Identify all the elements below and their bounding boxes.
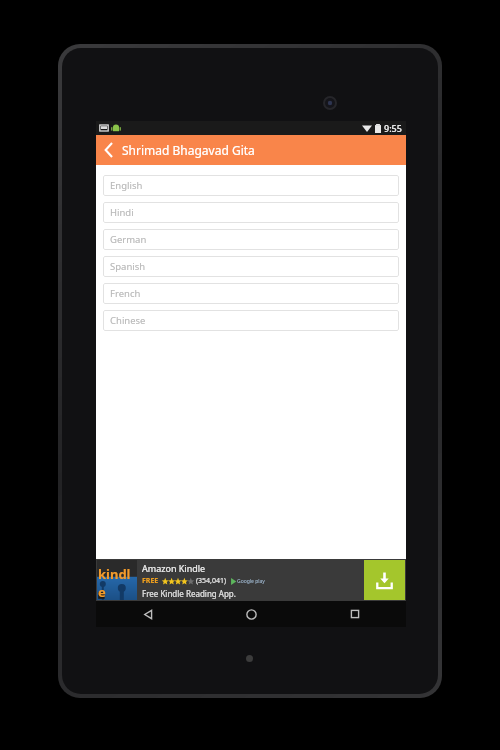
button[interactable]: Recents	[303, 601, 406, 627]
button[interactable]: kindle	[96, 559, 406, 601]
button[interactable]: Home	[200, 601, 303, 627]
staticText: Google play	[237, 578, 265, 585]
button[interactable]: German	[103, 229, 399, 250]
staticText: German	[110, 233, 147, 246]
button[interactable]: French	[103, 283, 399, 304]
staticText: (354,041)	[196, 576, 227, 586]
staticText: Chinese	[110, 314, 146, 327]
button[interactable]: Chinese	[103, 310, 399, 331]
button[interactable]: Back	[96, 135, 122, 165]
staticText: 9:55	[384, 122, 402, 134]
staticText: Amazon Kindle	[142, 562, 206, 574]
staticText: French	[110, 287, 141, 300]
button[interactable]: English	[103, 175, 399, 196]
button[interactable]: Spanish	[103, 256, 399, 277]
staticText: Hindi	[110, 206, 134, 219]
staticText: Shrimad Bhagavad Gita	[122, 142, 255, 158]
staticText: English	[110, 179, 143, 192]
staticText: FREE	[142, 576, 159, 586]
button[interactable]: Hindi	[103, 202, 399, 223]
staticText: Free Kindle Reading App.	[142, 588, 236, 599]
button[interactable]: Back	[96, 601, 200, 627]
button[interactable]: Install	[364, 560, 405, 600]
staticText: Spanish	[110, 260, 146, 273]
staticText: kindle	[98, 565, 137, 600]
